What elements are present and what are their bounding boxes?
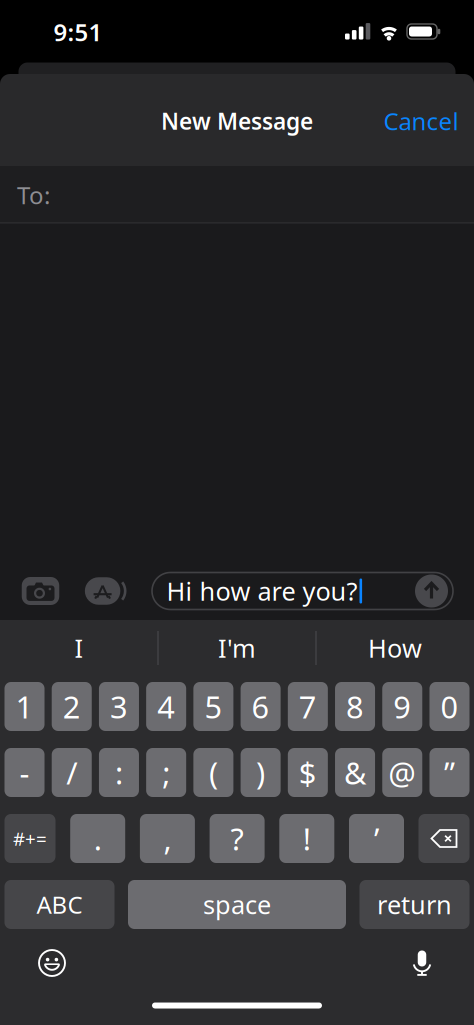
button[interactable]: (: [193, 748, 233, 797]
staticText: ABC: [36, 889, 82, 920]
staticText: #+=: [13, 826, 47, 851]
staticText: Hi how are you?: [166, 574, 357, 608]
staticText: 9: [393, 686, 411, 727]
staticText: ): [256, 752, 265, 793]
button[interactable]: 0: [429, 682, 469, 731]
staticText: 3: [110, 686, 128, 727]
button[interactable]: 8: [335, 682, 375, 731]
button[interactable]: &: [335, 748, 375, 797]
staticText: 7: [299, 686, 317, 727]
button[interactable]: Camera: [22, 577, 59, 605]
button[interactable]: 3: [99, 682, 139, 731]
button[interactable]: To: [0, 166, 474, 222]
button[interactable]: ’: [349, 814, 404, 863]
button[interactable]: I: [4, 625, 154, 671]
staticText: -: [19, 752, 29, 793]
staticText: ;: [162, 752, 170, 793]
button[interactable]: 5: [193, 682, 233, 731]
staticText: space: [203, 888, 271, 921]
staticText: 8: [346, 686, 364, 727]
button[interactable]: ,: [140, 814, 195, 863]
staticText: 0: [440, 686, 458, 727]
staticText: &: [344, 752, 366, 793]
button[interactable]: ABC: [4, 880, 114, 929]
button[interactable]: Cancel: [383, 105, 458, 137]
staticText: ?: [231, 818, 244, 859]
button[interactable]: 4: [146, 682, 186, 731]
button[interactable]: .: [70, 814, 125, 863]
button[interactable]: $: [288, 748, 328, 797]
staticText: To:: [17, 179, 50, 211]
button[interactable]: Message: [152, 572, 453, 609]
staticText: return: [377, 888, 452, 921]
staticText: How: [368, 631, 422, 665]
button[interactable]: Emoji: [32, 943, 72, 983]
button[interactable]: :: [99, 748, 139, 797]
staticText: $: [299, 752, 317, 793]
button[interactable]: ): [241, 748, 281, 797]
staticText: 9:51: [53, 16, 102, 48]
staticText: /: [66, 752, 77, 793]
button[interactable]: ;: [146, 748, 186, 797]
staticText: Cancel: [383, 105, 458, 137]
button[interactable]: 6: [241, 682, 281, 731]
staticText: 5: [204, 686, 222, 727]
button[interactable]: 7: [288, 682, 328, 731]
button[interactable]: return: [359, 880, 469, 929]
button[interactable]: @: [382, 748, 422, 797]
staticText: New Message: [161, 106, 313, 136]
staticText: 4: [157, 686, 175, 727]
staticText: @: [388, 752, 416, 793]
staticText: (: [209, 752, 218, 793]
staticText: .: [94, 818, 102, 859]
staticText: 6: [252, 686, 270, 727]
staticText: ”: [444, 752, 455, 793]
staticText: :: [115, 752, 123, 793]
staticText: !: [303, 818, 311, 859]
button[interactable]: -: [4, 748, 44, 797]
button[interactable]: !: [279, 814, 334, 863]
button[interactable]: How: [320, 625, 470, 671]
button[interactable]: Apps: [80, 577, 128, 605]
button[interactable]: I'm: [162, 625, 312, 671]
staticText: I'm: [218, 631, 256, 665]
button[interactable]: #+=: [4, 814, 55, 863]
button[interactable]: 2: [52, 682, 92, 731]
button[interactable]: Send: [415, 574, 448, 607]
button[interactable]: 1: [4, 682, 44, 731]
staticText: 2: [63, 686, 81, 727]
button[interactable]: space: [128, 880, 346, 929]
button[interactable]: Dictate: [402, 943, 442, 983]
button[interactable]: /: [52, 748, 92, 797]
staticText: ,: [163, 818, 171, 859]
button[interactable]: 9: [382, 682, 422, 731]
staticText: 1: [15, 686, 33, 727]
button[interactable]: ”: [429, 748, 469, 797]
button[interactable]: ?: [210, 814, 265, 863]
button[interactable]: Delete: [418, 814, 469, 863]
staticText: I: [74, 631, 83, 665]
staticText: ’: [374, 818, 379, 859]
